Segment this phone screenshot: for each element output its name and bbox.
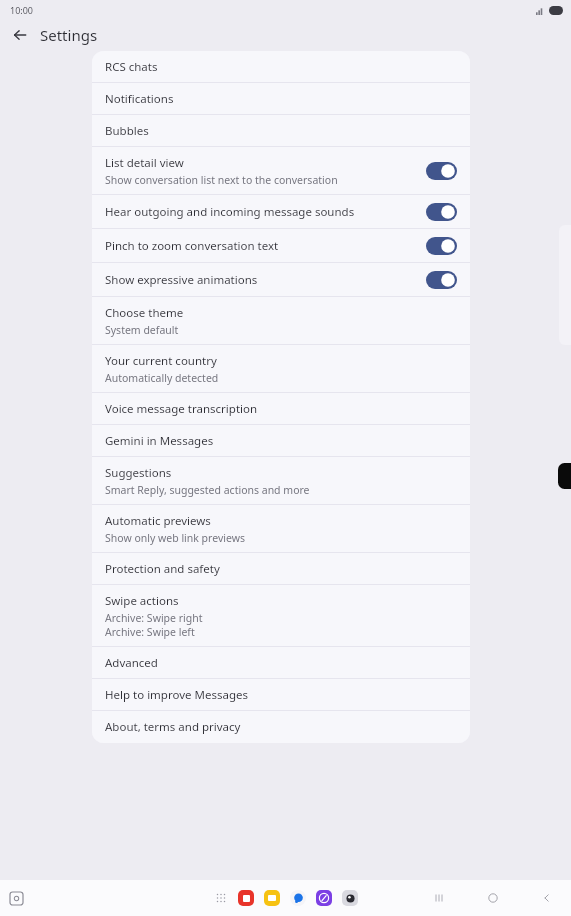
button[interactable]: Your current country [92, 345, 470, 393]
button[interactable]: List detail view [92, 147, 470, 195]
staticText: Automatically detected [105, 371, 219, 385]
staticText: Suggestions [105, 465, 172, 481]
staticText: Automatic previews [105, 513, 211, 529]
other: All apps [216, 893, 226, 903]
other: App [238, 890, 254, 906]
staticText: RCS chats [105, 59, 158, 75]
button[interactable]: Notifications [92, 83, 470, 115]
button[interactable]: Protection and safety [92, 553, 470, 585]
staticText: Archive: Swipe left [105, 625, 195, 639]
button[interactable]: Browser [314, 888, 334, 908]
staticText: Your current country [105, 353, 217, 369]
button[interactable]: Hear outgoing and incoming message sound… [92, 195, 470, 229]
button[interactable]: Recent app [6, 888, 26, 908]
staticText: Choose theme [105, 305, 184, 321]
button[interactable]: Messages [288, 888, 308, 908]
button[interactable]: Suggestions [92, 457, 470, 505]
staticText: Show conversation list next to the conve… [105, 173, 338, 187]
button[interactable]: Back [537, 888, 557, 908]
staticText: About, terms and privacy [105, 719, 241, 735]
button[interactable]: Gemini in Messages [92, 425, 470, 457]
staticText: Protection and safety [105, 561, 220, 577]
staticText: Show expressive animations [105, 272, 258, 288]
other: Camera [342, 890, 358, 906]
button[interactable]: Recents [429, 888, 449, 908]
button[interactable]: Files [262, 888, 282, 908]
staticText: Voice message transcription [105, 401, 258, 417]
button[interactable]: Voice message transcription [92, 393, 470, 425]
button[interactable]: Home [483, 888, 503, 908]
other: Messages [290, 890, 306, 906]
staticText: Smart Reply, suggested actions and more [105, 483, 310, 497]
staticText: Gemini in Messages [105, 433, 214, 449]
staticText: System default [105, 323, 179, 337]
button[interactable]: Swipe actions [92, 585, 470, 647]
button[interactable]: App [236, 888, 256, 908]
button[interactable]: Bubbles [92, 115, 470, 147]
staticText: Notifications [105, 91, 174, 107]
button[interactable]: RCS chats [92, 51, 470, 83]
button[interactable]: Help to improve Messages [92, 679, 470, 711]
staticText: Hear outgoing and incoming message sound… [105, 204, 355, 220]
button[interactable]: All apps [212, 889, 230, 907]
button[interactable]: Automatic previews [92, 505, 470, 553]
staticText: List detail view [105, 155, 184, 171]
staticText: Advanced [105, 655, 158, 671]
button[interactable]: Camera [340, 888, 360, 908]
button[interactable]: Back [8, 23, 32, 47]
staticText: Archive: Swipe right [105, 611, 203, 625]
staticText: Bubbles [105, 123, 149, 139]
staticText: Swipe actions [105, 593, 179, 609]
button[interactable]: Show expressive animations [92, 263, 470, 297]
staticText: 10:00 [10, 4, 34, 16]
other: Files [264, 890, 280, 906]
staticText: Settings [40, 25, 98, 45]
button[interactable]: Floating bubble [558, 463, 571, 489]
staticText: Pinch to zoom conversation text [105, 238, 279, 254]
button[interactable]: Pinch to zoom conversation text [92, 229, 470, 263]
other: Browser [316, 890, 332, 906]
button[interactable]: Choose theme [92, 297, 470, 345]
button[interactable]: About, terms and privacy [92, 711, 470, 743]
button[interactable]: Advanced [92, 647, 470, 679]
staticText: Help to improve Messages [105, 687, 248, 703]
staticText: Show only web link previews [105, 531, 245, 545]
